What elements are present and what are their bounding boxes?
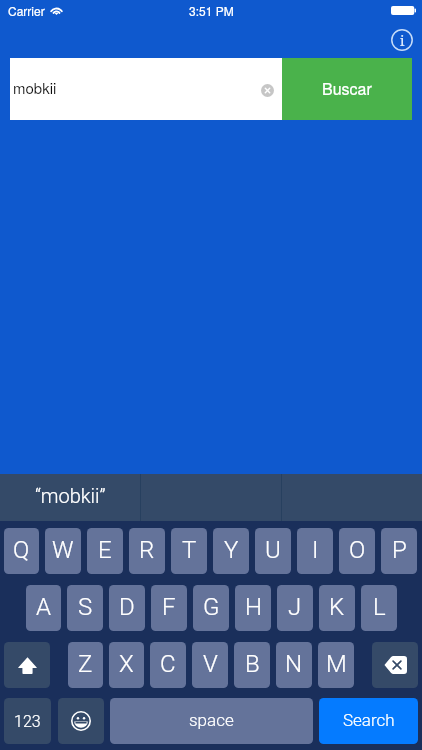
button[interactable]: J: [277, 585, 313, 631]
staticText: Search: [343, 710, 395, 730]
button[interactable]: S: [67, 585, 103, 631]
button[interactable]: G: [193, 585, 229, 631]
button[interactable]: mobkii: [10, 58, 282, 120]
button[interactable]: D: [109, 585, 145, 631]
staticText: Q: [13, 536, 30, 564]
staticText: C: [160, 650, 176, 678]
button[interactable]: E: [87, 528, 123, 574]
staticText: E: [98, 536, 112, 564]
staticText: W: [52, 536, 74, 564]
button[interactable]: C: [150, 642, 186, 688]
staticText: Z: [78, 650, 93, 678]
staticText: V: [203, 650, 218, 678]
button[interactable]: N: [276, 642, 312, 688]
button[interactable]: O: [339, 528, 375, 574]
button[interactable]: L: [361, 585, 397, 631]
staticText: I: [312, 536, 319, 564]
staticText: T: [182, 536, 197, 564]
staticText: H: [245, 593, 262, 621]
button[interactable]: X: [109, 642, 144, 688]
button[interactable]: T: [171, 528, 207, 574]
button[interactable]: Search: [319, 698, 418, 744]
button[interactable]: space: [110, 698, 313, 744]
staticText: D: [119, 593, 135, 621]
staticText: B: [245, 650, 260, 678]
button[interactable]: Clear text: [261, 84, 274, 97]
button[interactable]: M: [318, 642, 354, 688]
button[interactable]: R: [129, 528, 165, 574]
button[interactable]: Emoji keyboard: [58, 698, 104, 744]
staticText: L: [373, 593, 386, 621]
button[interactable]: Buscar: [282, 58, 412, 120]
staticText: Buscar: [322, 77, 372, 100]
staticText: F: [162, 593, 176, 621]
staticText: R: [139, 536, 155, 564]
staticText: space: [189, 710, 234, 730]
button[interactable]: Shift: [4, 642, 50, 688]
button[interactable]: 123: [4, 698, 51, 744]
staticText: mobkii: [13, 77, 57, 98]
button[interactable]: Q: [4, 528, 39, 574]
button[interactable]: V: [192, 642, 228, 688]
staticText: 3:51 PM: [189, 2, 234, 19]
staticText: M: [326, 650, 347, 678]
staticText: “mobkii”: [35, 484, 106, 507]
staticText: Y: [224, 536, 239, 564]
button[interactable]: Z: [68, 642, 103, 688]
button[interactable]: Info: [391, 29, 413, 51]
staticText: P: [392, 536, 407, 564]
button[interactable]: H: [235, 585, 271, 631]
staticText: Carrier: [8, 2, 45, 19]
staticText: 123: [14, 712, 41, 731]
staticText: J: [288, 593, 302, 621]
staticText: U: [265, 536, 281, 564]
staticText: N: [285, 650, 303, 678]
button[interactable]: “mobkii”: [0, 474, 140, 521]
button[interactable]: K: [319, 585, 355, 631]
staticText: G: [203, 593, 220, 621]
staticText: S: [78, 593, 93, 621]
button[interactable]: P: [381, 528, 417, 574]
staticText: X: [119, 650, 134, 678]
button[interactable]: W: [45, 528, 81, 574]
button[interactable]: U: [255, 528, 291, 574]
staticText: i: [400, 31, 405, 50]
staticText: O: [349, 536, 366, 564]
staticText: A: [36, 593, 51, 621]
button[interactable]: F: [151, 585, 187, 631]
button[interactable]: Y: [213, 528, 249, 574]
button[interactable]: I: [297, 528, 333, 574]
button[interactable]: B: [234, 642, 270, 688]
button[interactable]: Backspace: [372, 642, 418, 688]
staticText: K: [329, 593, 345, 621]
button[interactable]: A: [26, 585, 61, 631]
